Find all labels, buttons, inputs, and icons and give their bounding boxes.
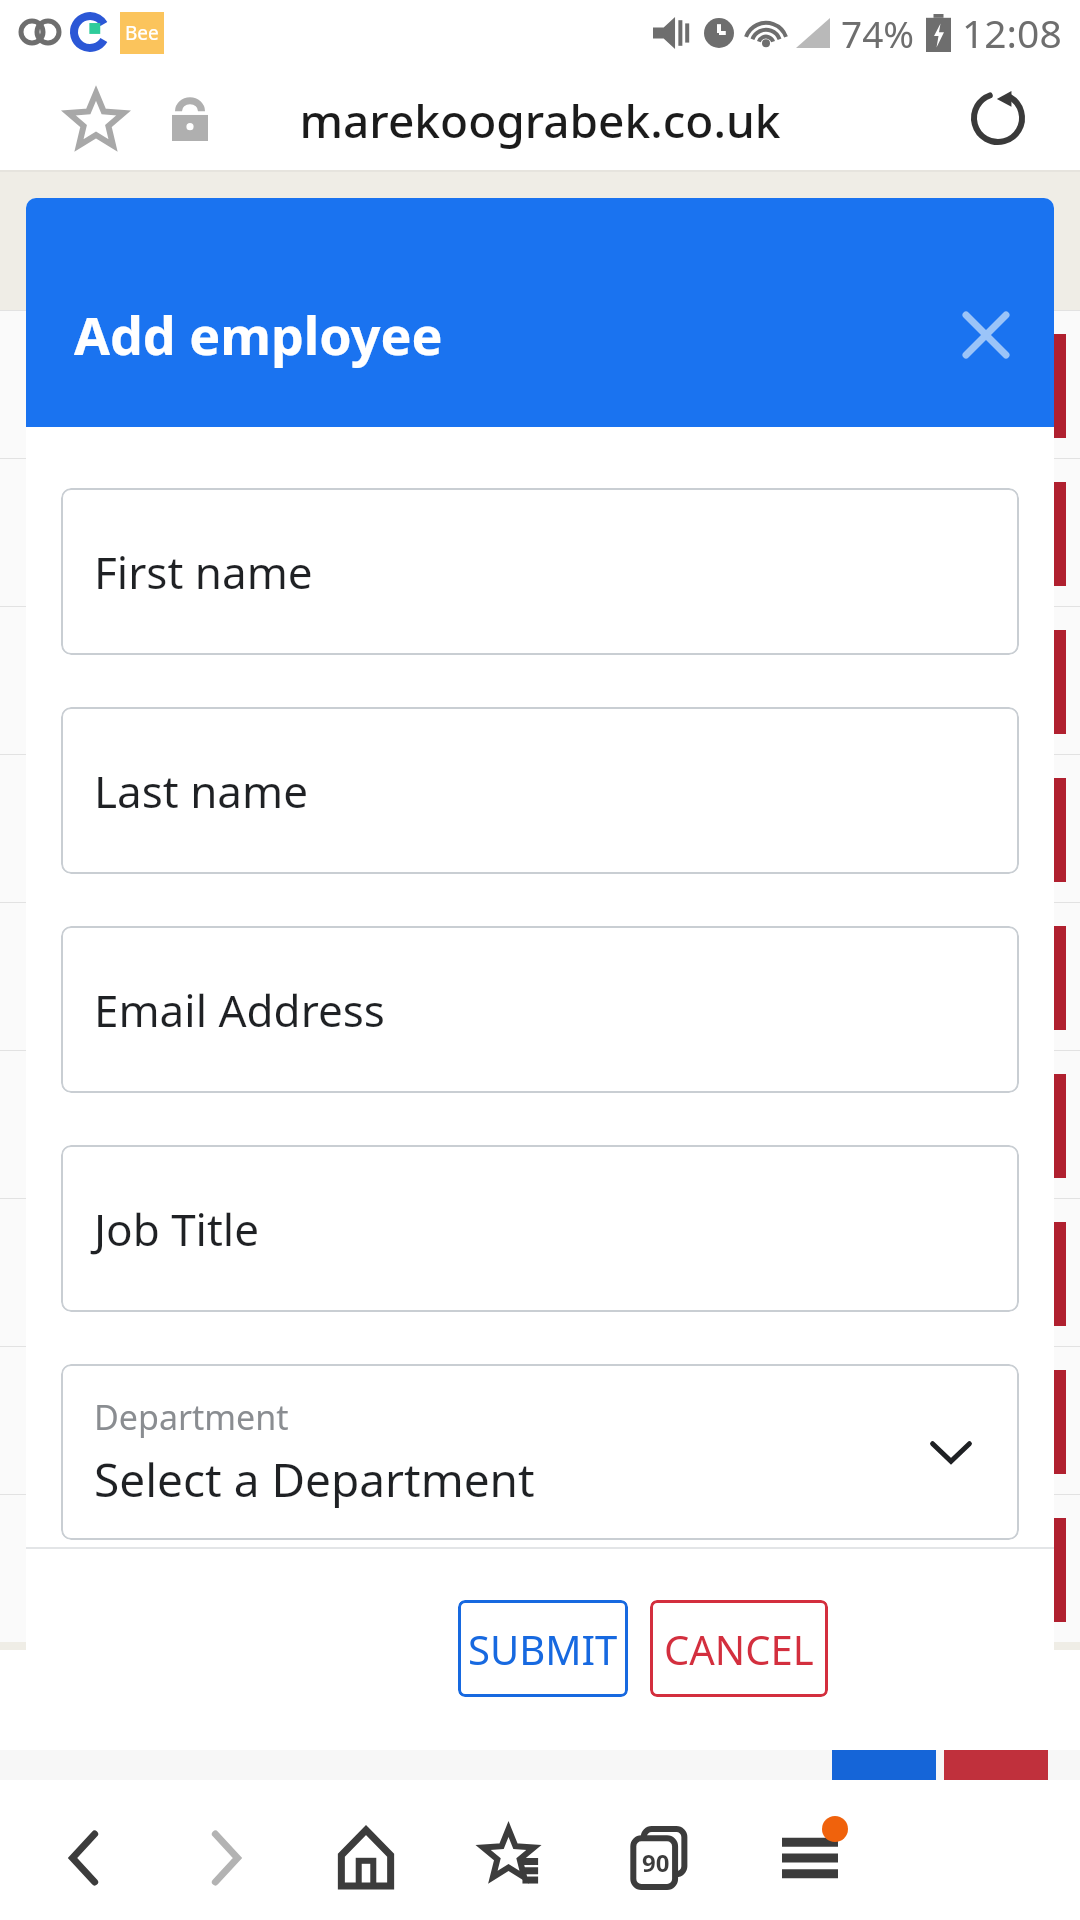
staticText: Select a Department xyxy=(94,1448,535,1511)
button[interactable]: Bookmark xyxy=(56,82,136,162)
button[interactable]: Close xyxy=(946,295,1026,375)
staticText: First name xyxy=(94,542,313,602)
staticText: Job Title xyxy=(94,1199,259,1259)
button[interactable]: Last name xyxy=(61,707,1019,874)
button[interactable]: Department xyxy=(61,1364,1019,1540)
button[interactable]: Email Address xyxy=(61,926,1019,1093)
staticText: CANCEL xyxy=(664,1622,814,1676)
button[interactable]: Back xyxy=(38,1810,134,1906)
staticText: 12:08 xyxy=(962,6,1062,59)
staticText: Last name xyxy=(94,761,308,821)
button[interactable]: Home xyxy=(318,1810,414,1906)
staticText: Bee xyxy=(125,20,159,46)
staticText: Bickford xyxy=(430,1774,586,1828)
button[interactable]: Bookmarks xyxy=(464,1810,560,1906)
button[interactable]: First name xyxy=(61,488,1019,655)
button[interactable]: Reload xyxy=(958,78,1038,158)
staticText: Email Address xyxy=(94,980,385,1040)
button[interactable]: Job Title xyxy=(61,1145,1019,1312)
button[interactable]: Menu xyxy=(762,1810,858,1906)
button[interactable]: Forward xyxy=(176,1810,272,1906)
staticText: Add employee xyxy=(74,299,443,370)
button[interactable]: SUBMIT xyxy=(458,1600,628,1697)
staticText: SUBMIT xyxy=(468,1622,618,1676)
staticText: marekoograbek.co.uk xyxy=(299,89,781,152)
button[interactable]: CANCEL xyxy=(650,1600,828,1697)
staticText: 74% xyxy=(841,8,915,58)
staticText: 90 xyxy=(642,1846,670,1879)
button[interactable]: Tabs xyxy=(612,1810,708,1906)
staticText: Department xyxy=(94,1394,289,1440)
